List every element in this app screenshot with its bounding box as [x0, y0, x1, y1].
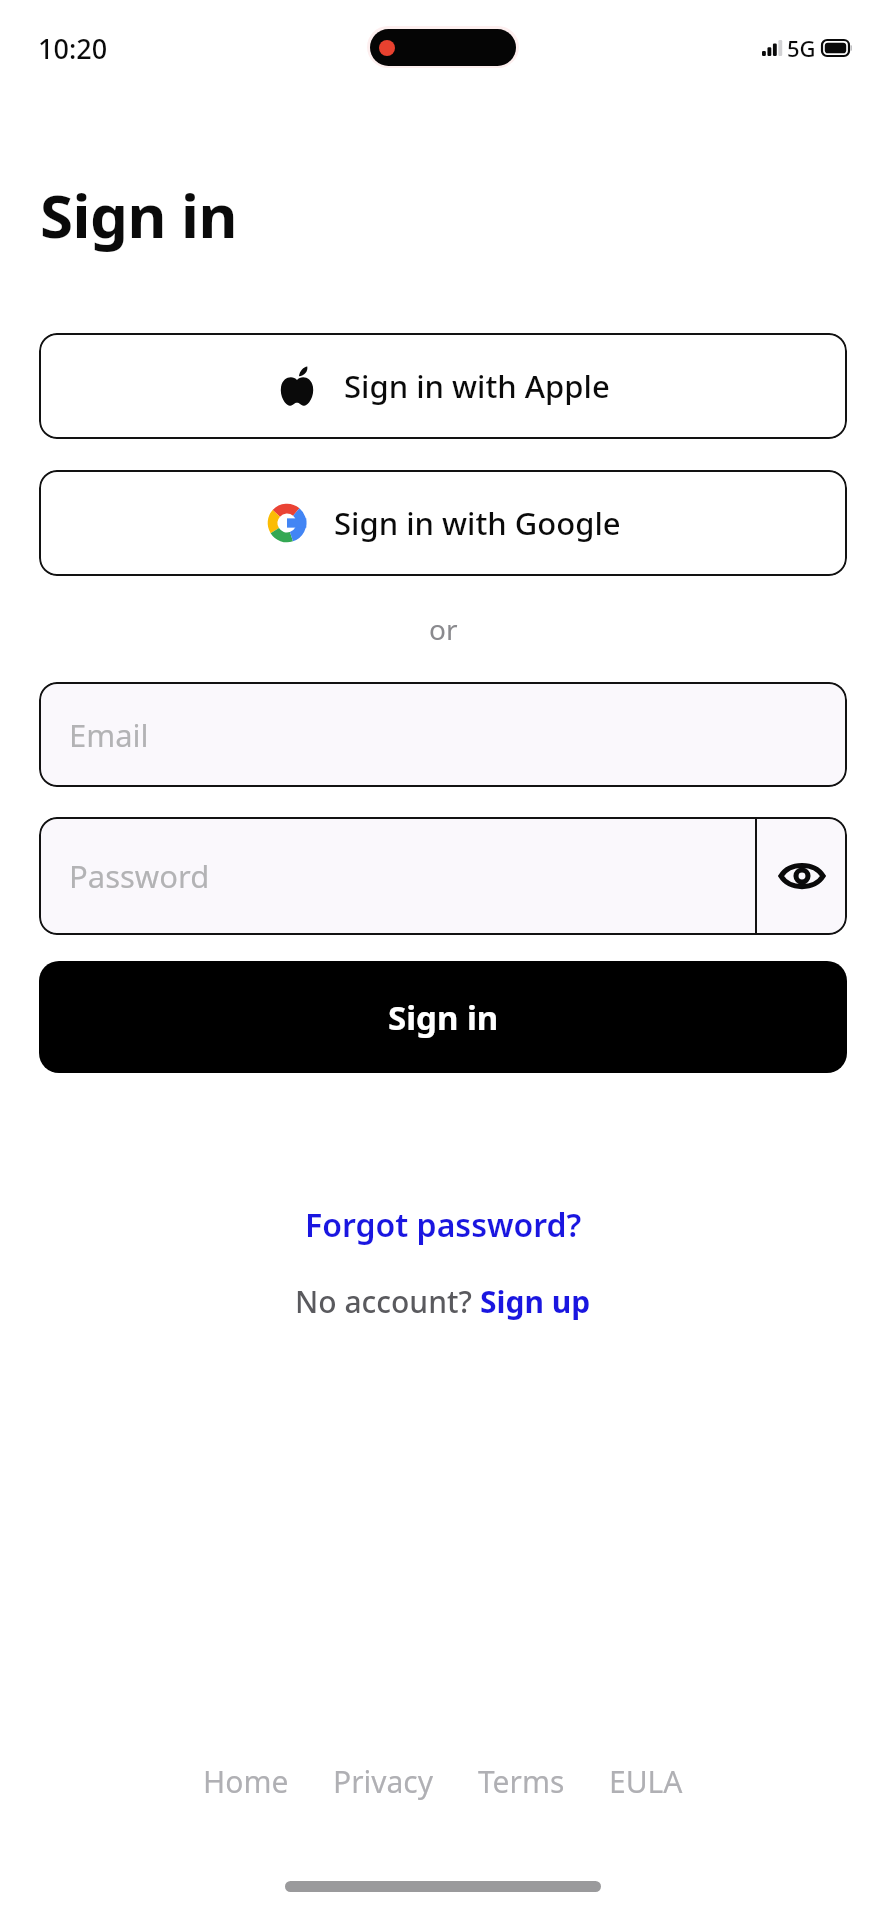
staticText: Password	[69, 855, 210, 897]
staticText: Sign in with Google	[334, 502, 621, 544]
staticText: 10:20	[38, 30, 108, 67]
staticText: No account?	[295, 1281, 480, 1322]
button[interactable]: Terms	[474, 1755, 569, 1808]
button[interactable]: Password	[39, 817, 755, 935]
staticText: Home	[203, 1761, 289, 1802]
button[interactable]: Sign up	[480, 1281, 591, 1322]
staticText: EULA	[609, 1761, 683, 1802]
button[interactable]: EULA	[605, 1755, 687, 1808]
button[interactable]: Show password	[757, 817, 847, 935]
staticText: Sign in	[388, 995, 499, 1040]
button[interactable]: Sign in with Google	[39, 470, 847, 576]
button[interactable]: Sign in with Apple	[39, 333, 847, 439]
staticText: Sign up	[480, 1281, 591, 1322]
button[interactable]: Sign in	[39, 961, 847, 1073]
staticText: 5G	[787, 33, 816, 63]
staticText: Terms	[478, 1761, 565, 1802]
staticText: Sign in	[40, 174, 237, 256]
staticText: Privacy	[333, 1761, 434, 1802]
button[interactable]: Home	[199, 1755, 293, 1808]
staticText: Sign in with Apple	[344, 365, 610, 407]
staticText: Forgot password?	[305, 1203, 582, 1247]
staticText: Email	[69, 714, 149, 756]
button[interactable]: Privacy	[329, 1755, 438, 1808]
button[interactable]: Email	[39, 682, 847, 787]
staticText: or	[429, 610, 458, 648]
button[interactable]: Forgot password?	[295, 1197, 592, 1253]
